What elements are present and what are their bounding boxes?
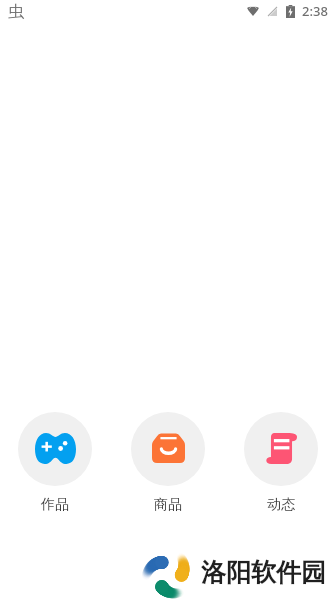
staticText: 虫 [8,2,24,22]
staticText: 商品 [154,496,182,514]
other: 作品 [35,433,76,464]
staticText: 洛阳软件园 [201,557,326,588]
button[interactable]: 商品 [131,412,205,514]
button[interactable]: 动态 [244,412,318,514]
other: 商品 [152,433,185,463]
staticText: 作品 [41,496,69,514]
other: 动态 [266,433,297,464]
staticText: 2:38 [302,2,328,20]
button[interactable]: 作品 [18,412,92,514]
staticText: 动态 [267,496,295,514]
